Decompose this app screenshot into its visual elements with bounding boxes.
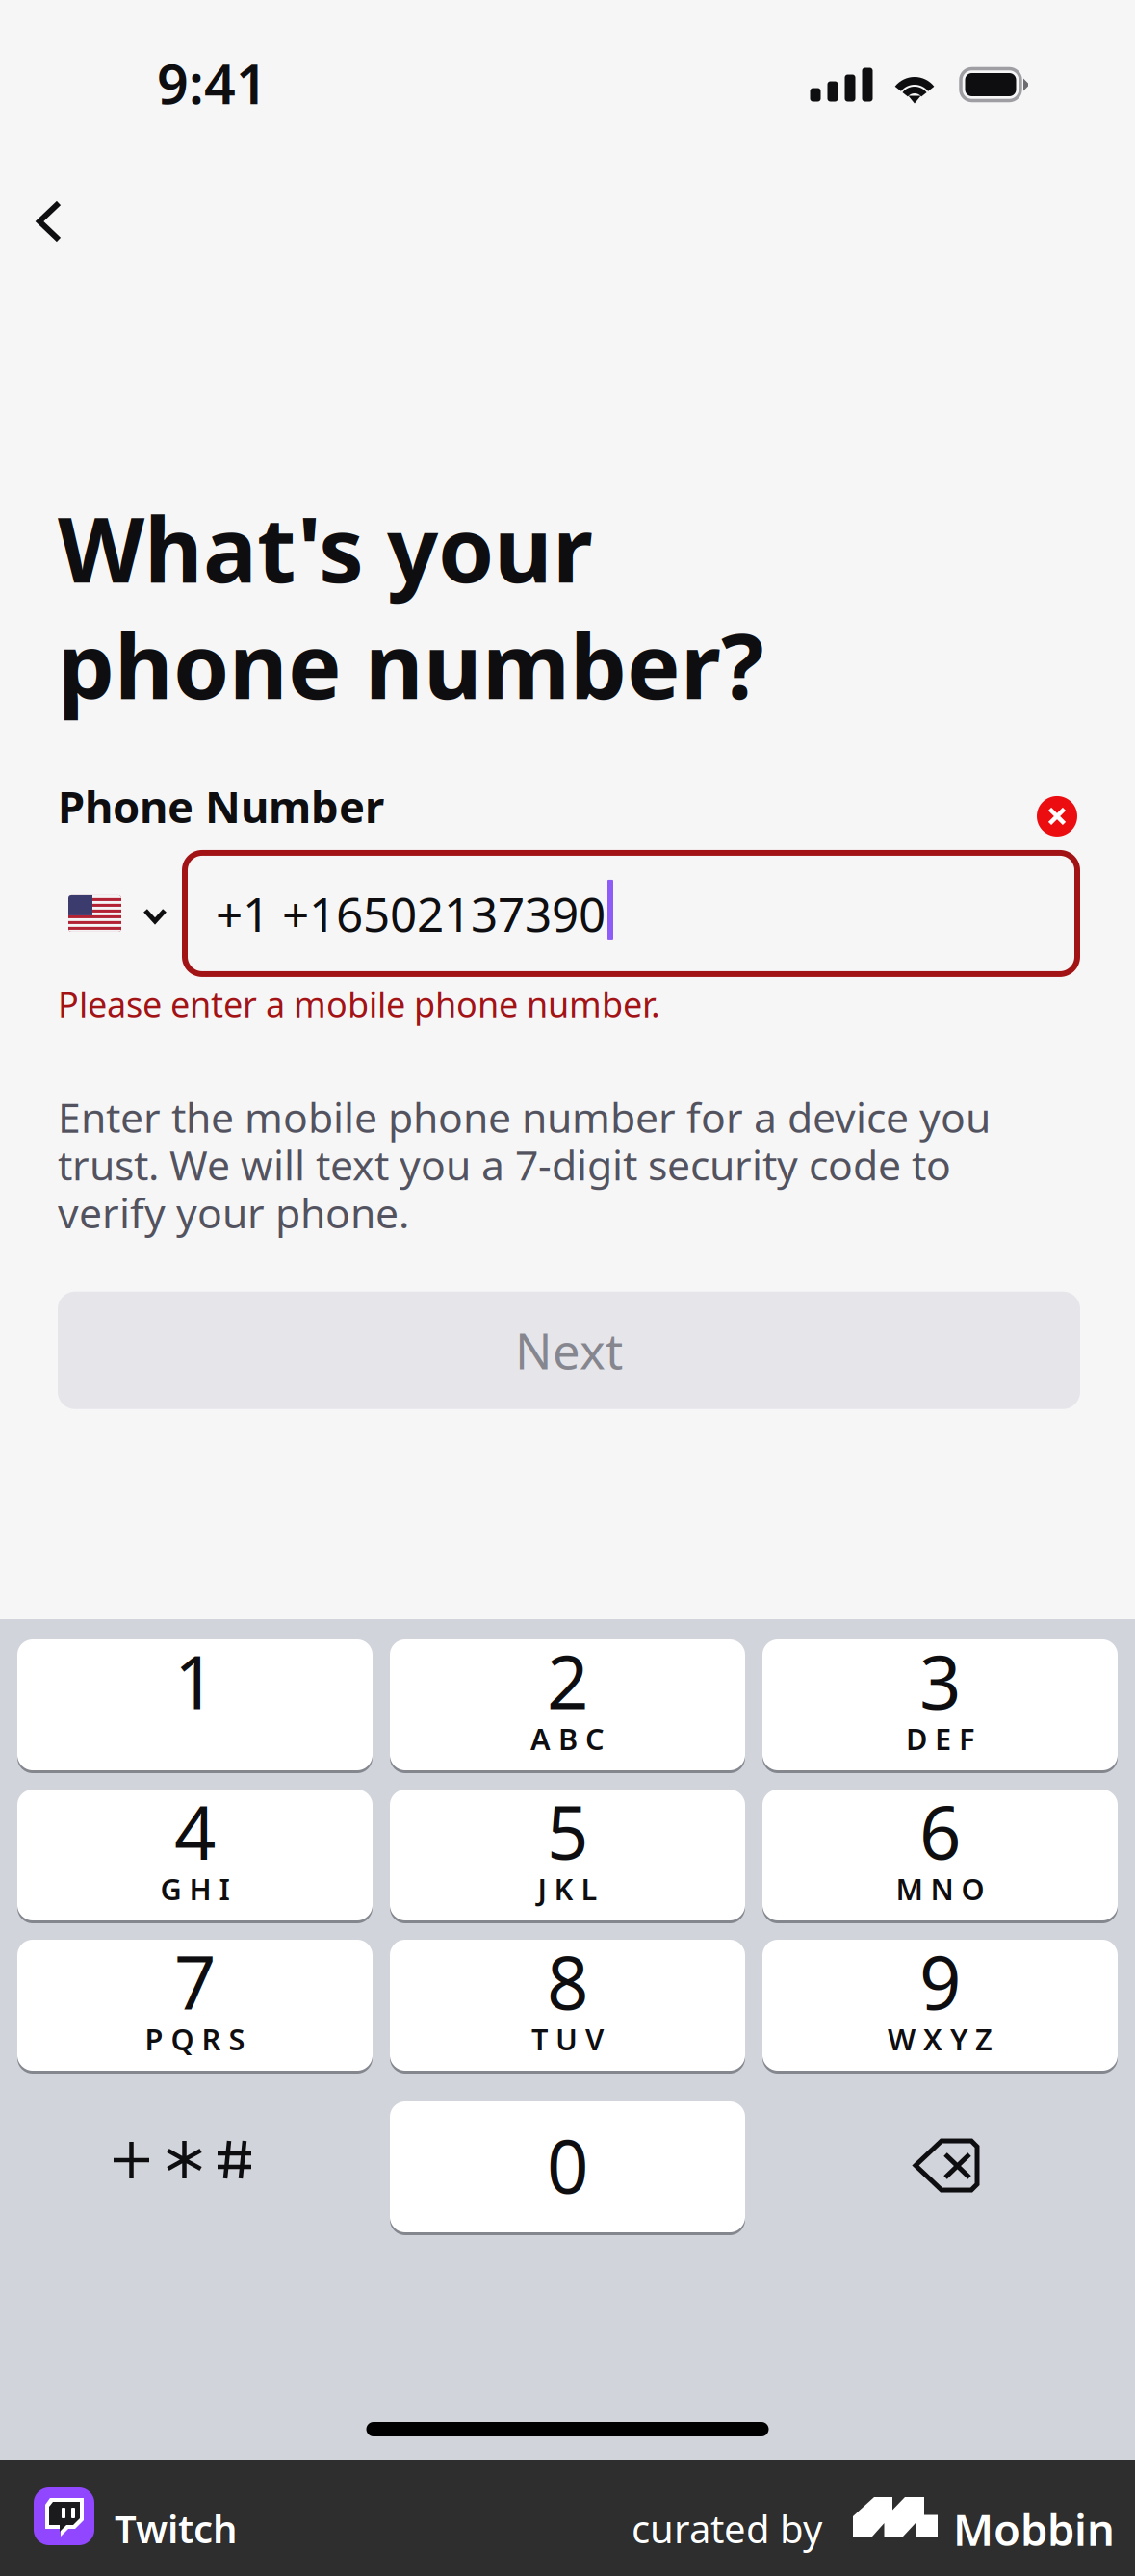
- staticText: D E F: [906, 1719, 974, 1758]
- staticText: 8: [547, 1932, 588, 2030]
- staticText: 0: [547, 2116, 588, 2213]
- staticText: Next: [515, 1318, 623, 1383]
- button[interactable]: 5: [390, 1790, 745, 1920]
- staticText: Please enter a mobile phone number.: [58, 981, 660, 1027]
- button[interactable]: Country code: [58, 853, 185, 974]
- staticText: What's your: [58, 488, 593, 607]
- button[interactable]: 2: [390, 1639, 745, 1770]
- staticText: M N O: [896, 1869, 984, 1908]
- staticText: Enter the mobile phone number for a devi…: [58, 1089, 991, 1240]
- staticText: phone number?: [58, 605, 764, 724]
- button[interactable]: 9: [762, 1940, 1118, 2071]
- staticText: 6: [919, 1782, 961, 1879]
- staticText: 5: [547, 1782, 588, 1879]
- staticText: 2: [547, 1632, 588, 1729]
- button[interactable]: 6: [762, 1790, 1118, 1920]
- staticText: P Q R S: [145, 2019, 245, 2058]
- button[interactable]: Plus star pound: [17, 2101, 373, 2232]
- button[interactable]: Clear: [1027, 776, 1080, 836]
- button[interactable]: 7: [17, 1940, 373, 2071]
- button[interactable]: 8: [390, 1940, 745, 2071]
- button[interactable]: Back: [0, 173, 100, 270]
- staticText: Phone Number: [58, 777, 384, 835]
- staticText: +1 +16502137390: [216, 882, 606, 945]
- button[interactable]: +1 +16502137390: [185, 853, 1077, 974]
- staticText: G H I: [160, 1869, 230, 1908]
- button[interactable]: Delete: [762, 2101, 1118, 2232]
- staticText: J K L: [538, 1869, 597, 1908]
- button[interactable]: 3: [762, 1639, 1118, 1770]
- staticText: Mobbin: [953, 2500, 1115, 2558]
- button[interactable]: 0: [390, 2101, 745, 2232]
- button[interactable]: 4: [17, 1790, 373, 1920]
- staticText: A B C: [530, 1719, 605, 1758]
- staticText: 3: [919, 1632, 961, 1729]
- staticText: 1: [174, 1632, 216, 1729]
- button[interactable]: Next: [58, 1292, 1080, 1409]
- staticText: 9:41: [157, 46, 268, 119]
- staticText: 4: [174, 1782, 216, 1879]
- staticText: 7: [174, 1932, 216, 2030]
- staticText: Twitch: [115, 2503, 238, 2554]
- staticText: curated by: [632, 2503, 822, 2554]
- staticText: T U V: [531, 2019, 604, 2058]
- button[interactable]: 1: [17, 1639, 373, 1770]
- staticText: 9: [919, 1932, 961, 2030]
- staticText: W X Y Z: [888, 2019, 993, 2058]
